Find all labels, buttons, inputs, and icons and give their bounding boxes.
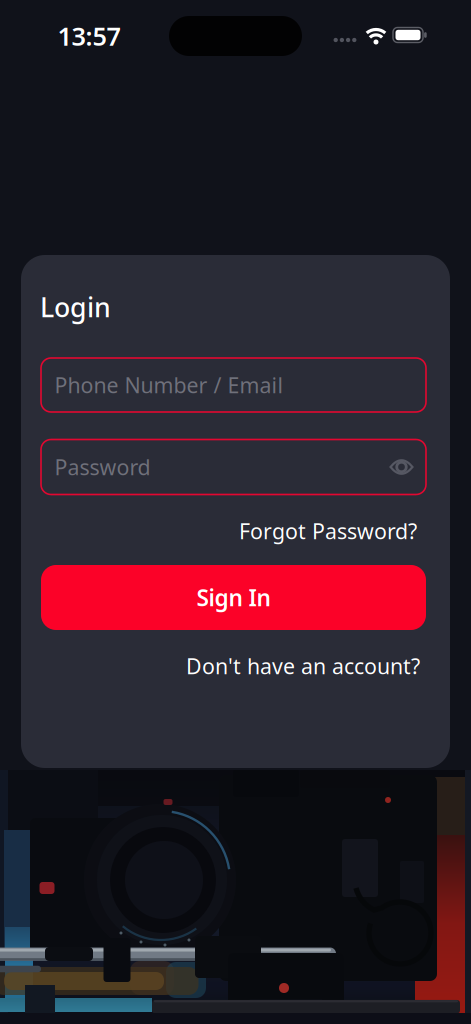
button[interactable]: Password (41, 439, 426, 494)
button[interactable]: Show password (390, 459, 412, 475)
staticText: Login (40, 289, 111, 325)
staticText: 13:57 (57, 19, 120, 53)
staticText: Password (54, 453, 150, 481)
staticText: Phone Number / Email (54, 371, 283, 399)
button[interactable]: Forgot Password? (239, 517, 417, 545)
button[interactable]: Sign In (41, 565, 426, 630)
staticText: Sign In (196, 582, 270, 612)
button[interactable]: Don't have an account? (186, 652, 420, 680)
staticText: Forgot Password? (239, 517, 417, 545)
staticText: Don't have an account? (186, 652, 420, 680)
button[interactable]: Phone Number / Email (41, 358, 426, 412)
